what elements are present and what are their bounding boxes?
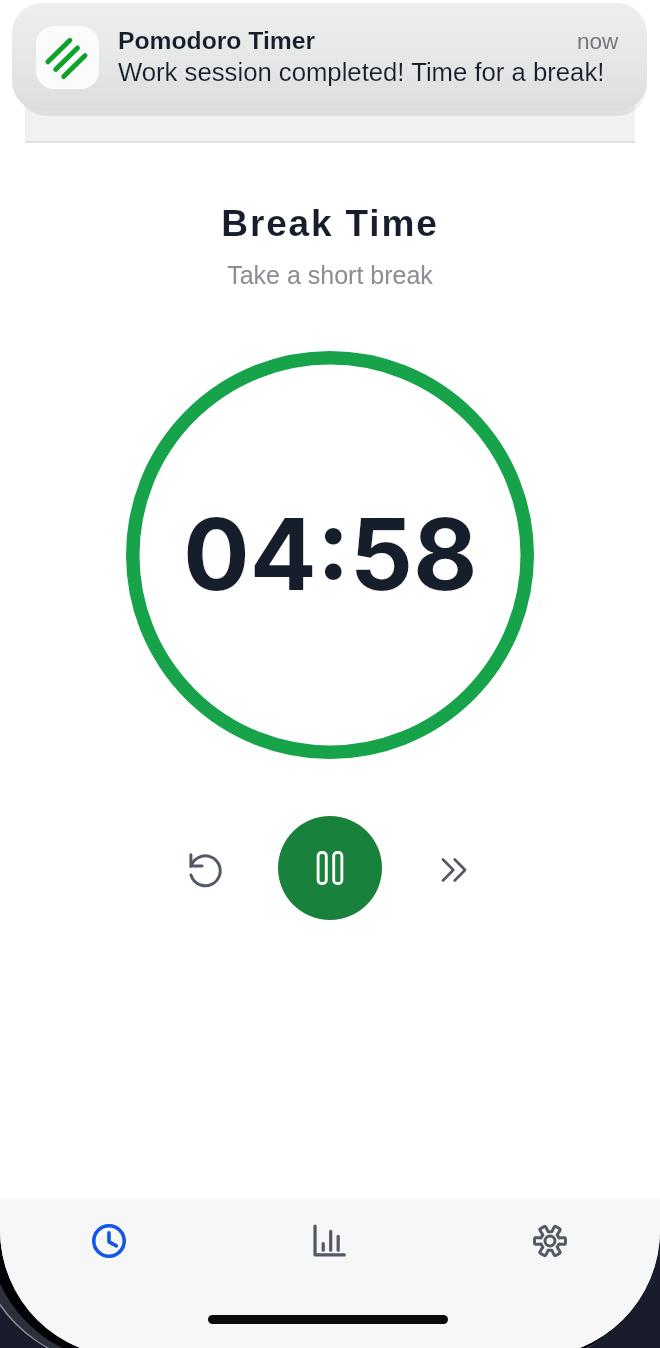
staticText: Work session completed! Time for a break… bbox=[118, 58, 605, 87]
button[interactable]: Timer tab bbox=[55, 1198, 163, 1284]
staticText: Pomodoro Timer bbox=[118, 27, 316, 55]
staticText: Take a short break bbox=[0, 261, 660, 289]
button[interactable]: Statistics tab bbox=[275, 1198, 383, 1284]
button[interactable]: Pause bbox=[278, 816, 382, 920]
button[interactable]: Reset timer bbox=[170, 835, 240, 905]
staticText: Break Time bbox=[0, 203, 660, 244]
button[interactable]: Settings tab bbox=[496, 1198, 604, 1284]
button[interactable]: Skip bbox=[420, 835, 490, 905]
staticText: now bbox=[577, 29, 619, 54]
staticText: 04:58 bbox=[183, 494, 478, 614]
